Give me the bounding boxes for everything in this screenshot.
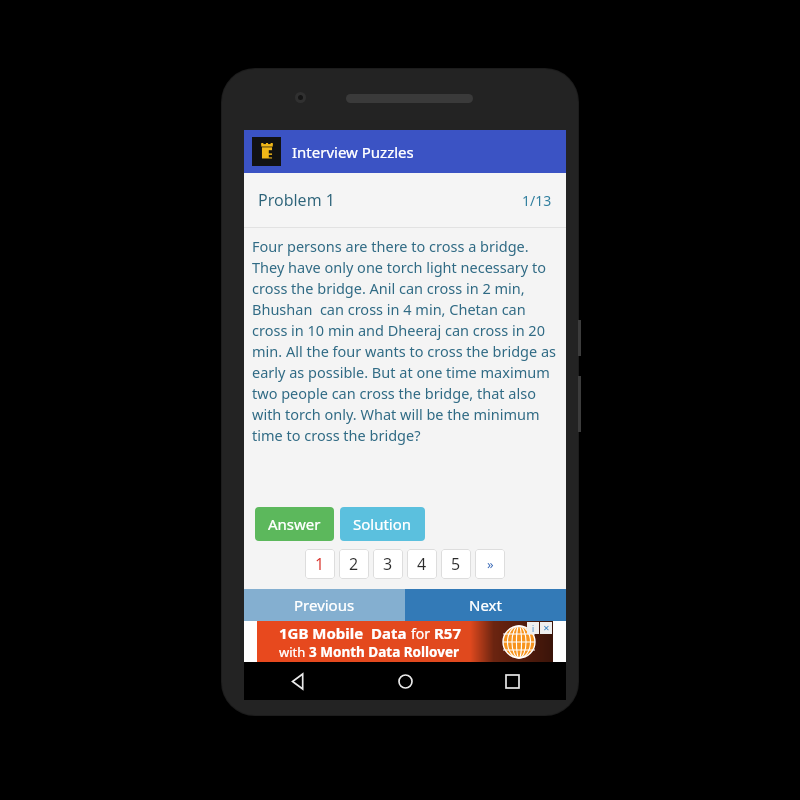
button[interactable]: App icon: [252, 137, 281, 166]
staticText: with: [279, 643, 309, 661]
staticText: 1: [315, 553, 325, 575]
button[interactable]: Advertisement: [244, 621, 566, 662]
button[interactable]: 2: [339, 549, 369, 579]
staticText: for: [411, 624, 434, 643]
button[interactable]: 1: [305, 549, 335, 579]
button[interactable]: Recents: [459, 662, 566, 700]
staticText: ✕: [543, 624, 550, 633]
staticText: Previous: [294, 595, 355, 615]
staticText: »: [487, 555, 494, 573]
staticText: 1/13: [522, 191, 552, 210]
staticText: Solution: [353, 514, 412, 534]
button[interactable]: 3: [373, 549, 403, 579]
button[interactable]: Previous: [244, 589, 405, 621]
button[interactable]: Solution: [340, 507, 425, 541]
button[interactable]: 5: [441, 549, 471, 579]
button[interactable]: Back: [244, 662, 352, 700]
staticText: Answer: [268, 514, 321, 534]
staticText: 5: [451, 553, 461, 575]
staticText: 1GB Mobile Data: [279, 623, 411, 643]
staticText: 4: [417, 553, 427, 575]
button[interactable]: Answer: [255, 507, 334, 541]
staticText: Next: [469, 595, 502, 615]
staticText: 3 Month Data Rollover: [309, 643, 460, 661]
button[interactable]: Next: [405, 589, 566, 621]
staticText: Problem 1: [258, 189, 335, 211]
staticText: Four persons are there to cross a bridge…: [252, 236, 558, 445]
staticText: Interview Puzzles: [292, 142, 414, 162]
button[interactable]: 4: [407, 549, 437, 579]
staticText: i: [532, 623, 535, 634]
staticText: R57: [434, 623, 462, 643]
staticText: 3: [383, 553, 393, 575]
button[interactable]: »: [475, 549, 505, 579]
button[interactable]: Home: [352, 662, 459, 700]
staticText: 2: [349, 553, 359, 575]
